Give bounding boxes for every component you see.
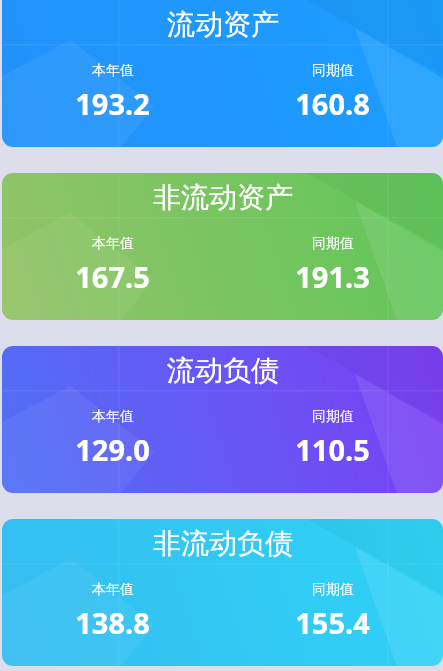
- staticText: 本年值: [92, 235, 134, 253]
- staticText: 本年值: [92, 408, 134, 426]
- staticText: 138.8: [75, 603, 150, 642]
- staticText: 流动负债: [167, 353, 279, 388]
- staticText: 167.5: [75, 257, 150, 296]
- staticText: 本年值: [92, 62, 134, 80]
- button[interactable]: 流动负债: [2, 346, 443, 493]
- staticText: 非流动资产: [153, 180, 293, 215]
- staticText: 193.2: [75, 84, 150, 123]
- staticText: 155.4: [295, 603, 370, 642]
- staticText: 160.8: [295, 84, 370, 123]
- staticText: 110.5: [295, 430, 370, 469]
- staticText: 本年值: [92, 581, 134, 599]
- button[interactable]: 流动资产: [2, 0, 443, 147]
- staticText: 同期值: [312, 62, 354, 80]
- staticText: 同期值: [312, 235, 354, 253]
- staticText: 同期值: [312, 581, 354, 599]
- button[interactable]: 非流动负债: [2, 519, 443, 666]
- staticText: 129.0: [75, 430, 150, 469]
- staticText: 流动资产: [167, 7, 279, 42]
- staticText: 191.3: [295, 257, 370, 296]
- staticText: 同期值: [312, 408, 354, 426]
- button[interactable]: 非流动资产: [2, 173, 443, 320]
- staticText: 非流动负债: [153, 526, 293, 561]
